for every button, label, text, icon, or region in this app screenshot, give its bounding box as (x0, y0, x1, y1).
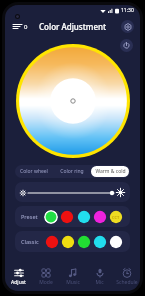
staticText: Color wheel (20, 168, 48, 175)
button[interactable]: Power (120, 39, 133, 52)
staticText: 11:30 (121, 7, 134, 14)
button[interactable]: Classic color 1 (45, 235, 59, 249)
staticText: Music (66, 279, 80, 286)
staticText: 0 (24, 23, 28, 31)
staticText: Warm & cold (95, 168, 126, 175)
button[interactable]: Mic (86, 265, 113, 288)
button[interactable]: Classic color 3 (77, 235, 91, 249)
button[interactable]: Menu (11, 20, 30, 33)
staticText: Color Adjustment (39, 21, 107, 32)
staticText: Classic (21, 238, 39, 245)
staticText: Mic (95, 279, 104, 286)
staticText: Preset (21, 213, 38, 220)
staticText: Color ring (60, 168, 84, 175)
staticText: Adjust (11, 279, 26, 286)
button[interactable]: Preset color 2 (60, 210, 74, 224)
button[interactable]: Color wheel (16, 166, 52, 177)
button[interactable]: Preset color 3 (77, 210, 91, 224)
button[interactable]: Mode (32, 265, 59, 288)
button[interactable]: Settings (121, 20, 134, 33)
button[interactable]: Color ring (54, 166, 89, 177)
staticText: Mode (39, 279, 53, 286)
staticText: Schedule (116, 279, 138, 286)
button[interactable]: Music (59, 265, 86, 288)
button[interactable]: Classic color 2 (61, 235, 75, 249)
button[interactable]: Brightness (15, 182, 130, 202)
staticText: CCT (112, 215, 120, 220)
button[interactable]: Preset color 5 (109, 210, 123, 224)
button[interactable]: Classic color 4 (93, 235, 107, 249)
button[interactable]: Adjust (5, 265, 32, 288)
button[interactable]: Warm & cold (91, 166, 129, 177)
button[interactable]: Schedule (113, 265, 140, 288)
button[interactable]: Preset color 4 (93, 210, 107, 224)
button[interactable]: Classic color 5 (109, 235, 123, 249)
button[interactable]: Preset color 1 (44, 210, 58, 224)
button[interactable]: Color wheel (16, 44, 130, 158)
